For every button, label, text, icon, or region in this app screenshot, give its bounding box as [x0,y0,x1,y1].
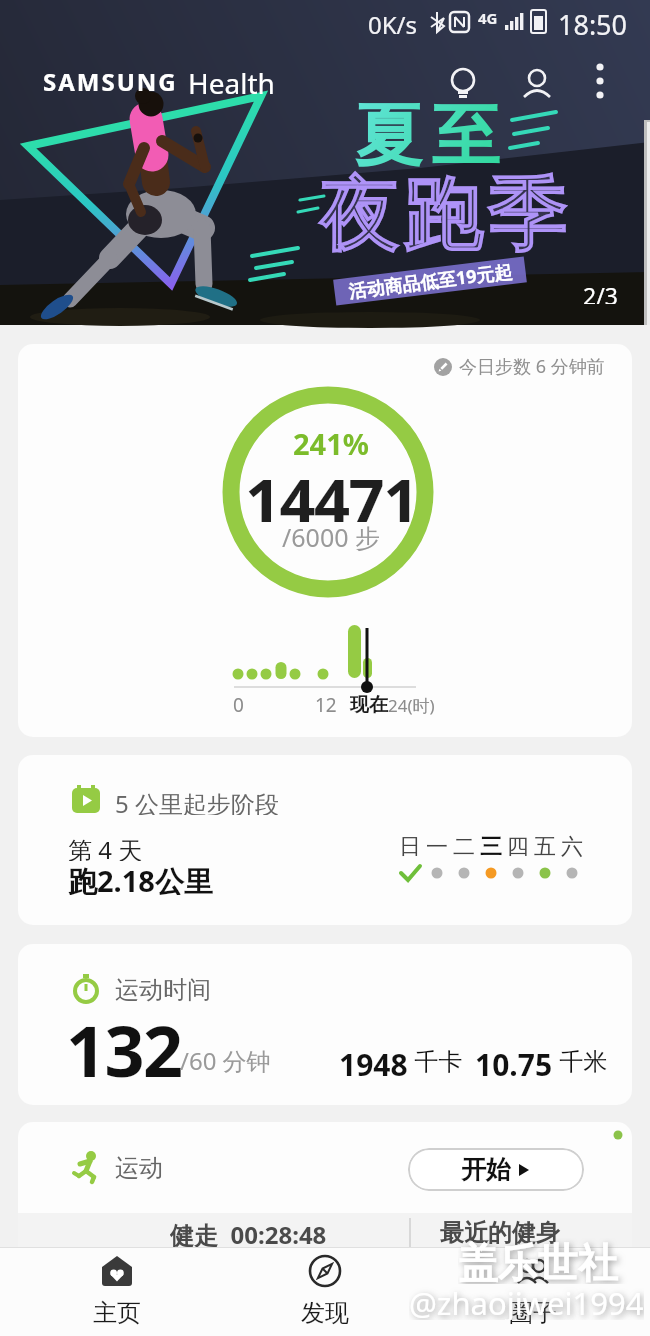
staticText: 5 公里起步阶段 [115,787,279,815]
button[interactable]: 发现 [265,1253,385,1333]
staticText: 活动商品低至19元起 [347,259,514,304]
staticText: 0 [233,692,244,716]
staticText: 12 [315,692,337,716]
staticText: 圈子 [509,1298,557,1328]
button[interactable]: 今日步数 6 分钟前 [18,344,632,737]
staticText: 跑2.18公里 [68,861,213,895]
staticText: 发现 [301,1298,349,1328]
button[interactable]: 5 公里起步阶段 [18,755,632,925]
staticText: 4G [478,8,498,26]
staticText: 241% [293,424,369,460]
staticText: 132 [66,1002,182,1084]
staticText: 千米 [553,1044,608,1076]
staticText: Health [188,64,275,98]
staticText: 日 [399,833,421,859]
staticText: /60 分钟 [180,1044,271,1074]
staticText: 千卡 [408,1044,475,1076]
staticText: 六 [561,833,583,859]
staticText: 主页 [93,1298,141,1328]
staticText: 一 [426,833,448,859]
staticText: 三 [480,833,502,859]
button[interactable]: 开始 [408,1148,584,1191]
staticText: 24(时) [388,694,435,717]
staticText: 今日步数 6 分钟前 [459,354,605,379]
button[interactable]: 主页 [57,1253,177,1333]
staticText: 最近的健身 [440,1218,560,1248]
button[interactable]: 今日步数 6 分钟前 [434,354,605,379]
staticText: 健走 00:28:48 [170,1218,327,1248]
staticText: 2/3 [583,280,618,304]
staticText: 第 4 天 [68,833,143,861]
staticText: SAMSUNG [43,65,178,98]
button[interactable]: 圈子 [473,1253,593,1333]
staticText: 1948 [339,1044,408,1076]
staticText: 14471 [245,458,418,522]
staticText: 10.75 [475,1044,553,1076]
staticText: @zhaojiwei1994 [409,1282,644,1320]
staticText: 四 [507,833,529,859]
staticText: 现在 [350,693,388,717]
staticText: 0K/s [368,8,418,36]
button[interactable]: 运动时间 [18,944,632,1105]
staticText: 五 [534,833,556,859]
staticText: 夜跑季 [318,164,570,265]
staticText: 二 [453,833,475,859]
staticText: 夜跑季 [318,164,570,265]
staticText: 开始 [461,1154,511,1185]
staticText: 18:50 [558,6,628,38]
staticText: 夏至 [350,94,504,180]
staticText: 盖乐世社区 [458,1238,642,1284]
staticText: /6000 步 [282,520,381,554]
staticText: 运动 [115,1153,163,1181]
button[interactable]: SAMSUNG [43,64,275,98]
staticText: 运动时间 [115,975,211,1003]
